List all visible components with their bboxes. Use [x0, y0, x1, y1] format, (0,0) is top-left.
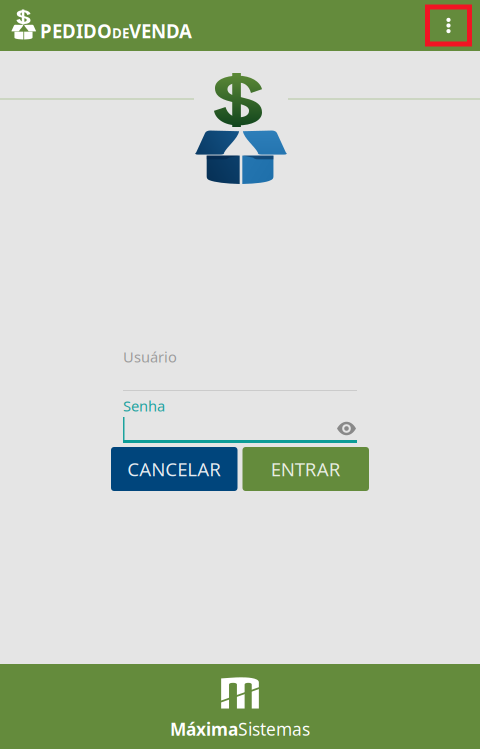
staticText: PEDIDO	[40, 18, 112, 43]
staticText: DE	[112, 24, 129, 42]
staticText: Senha	[123, 396, 165, 415]
button[interactable]: CANCELAR	[111, 447, 237, 491]
staticText: VENDA	[129, 18, 192, 43]
staticText: Usuário	[123, 347, 177, 366]
staticText: ENTRAR	[271, 457, 341, 481]
button[interactable]: More options	[425, 4, 472, 46]
staticText: Sistemas	[238, 717, 310, 740]
staticText: Máxima	[170, 717, 238, 740]
button[interactable]: Show password	[337, 422, 356, 435]
button[interactable]: ENTRAR	[242, 447, 369, 491]
staticText: CANCELAR	[127, 457, 221, 481]
